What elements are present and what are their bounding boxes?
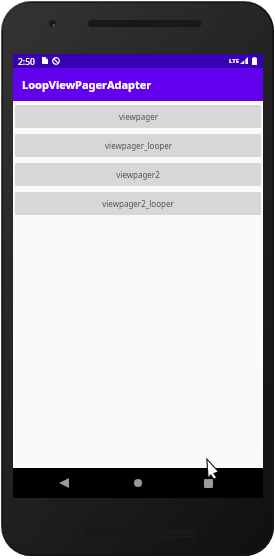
staticText: LTE bbox=[229, 57, 240, 65]
staticText: viewpager_looper bbox=[105, 140, 172, 151]
staticText: viewpager bbox=[119, 111, 158, 122]
button[interactable]: viewpager_looper bbox=[15, 134, 261, 157]
button[interactable]: viewpager2_looper bbox=[15, 192, 261, 215]
staticText: 2:50 bbox=[18, 56, 35, 68]
button[interactable]: Recent apps bbox=[193, 468, 223, 498]
staticText: viewpager2_looper bbox=[102, 198, 174, 209]
staticText: LoopViewPagerAdapter bbox=[22, 77, 152, 92]
button[interactable]: viewpager2 bbox=[15, 163, 261, 186]
staticText: viewpager2 bbox=[116, 169, 160, 180]
button[interactable]: viewpager bbox=[15, 105, 261, 128]
button[interactable]: Home bbox=[123, 468, 153, 498]
button[interactable]: Back bbox=[49, 468, 79, 498]
